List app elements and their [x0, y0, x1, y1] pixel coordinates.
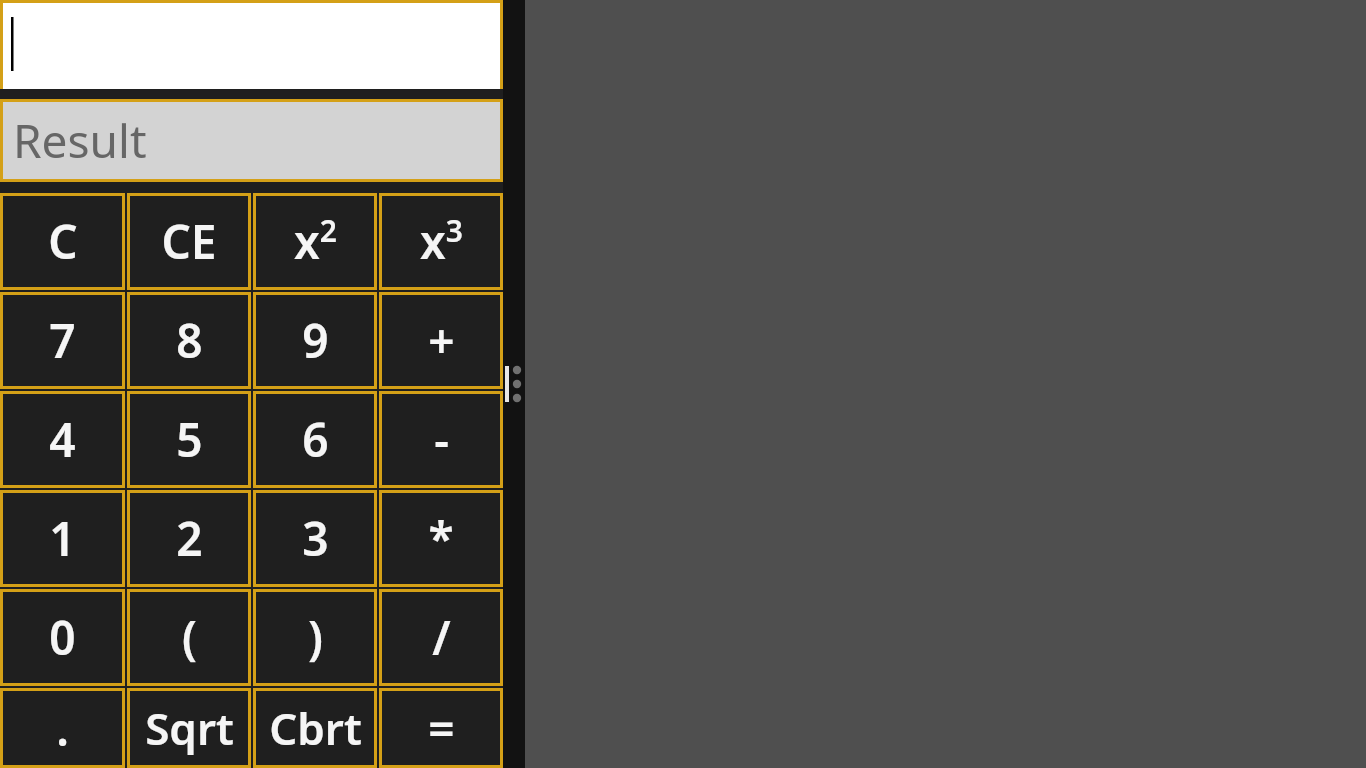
staticText: +	[428, 309, 455, 372]
staticText: -	[434, 408, 449, 471]
button[interactable]: 6	[256, 394, 374, 485]
staticText: x3	[420, 210, 463, 273]
button[interactable]: Sqrt	[130, 691, 248, 765]
staticText: CE	[161, 210, 217, 273]
button[interactable]: )	[256, 592, 374, 683]
staticText: )	[308, 606, 323, 669]
button[interactable]: 8	[130, 295, 248, 386]
staticText: *	[428, 507, 454, 570]
staticText: Cbrt	[269, 698, 362, 758]
button[interactable]: 2	[130, 493, 248, 584]
staticText: 1	[49, 507, 76, 570]
button[interactable]: 7	[3, 295, 122, 386]
button[interactable]: Resize panes	[503, 0, 525, 768]
staticText: /	[432, 606, 451, 669]
staticText: 6	[302, 408, 329, 471]
staticText: 7	[49, 309, 76, 372]
button[interactable]: 0	[3, 592, 122, 683]
button[interactable]: 5	[130, 394, 248, 485]
button[interactable]	[3, 3, 500, 89]
button[interactable]: 9	[256, 295, 374, 386]
button[interactable]: (	[130, 592, 248, 683]
button[interactable]: Cbrt	[256, 691, 374, 765]
button[interactable]: +	[382, 295, 500, 386]
button[interactable]: -	[382, 394, 500, 485]
button[interactable]: *	[382, 493, 500, 584]
button[interactable]: Result	[3, 102, 500, 179]
button[interactable]: CE	[130, 196, 248, 287]
button[interactable]: x2	[256, 196, 374, 287]
staticText: (	[182, 606, 197, 669]
button[interactable]: 3	[256, 493, 374, 584]
button[interactable]: .	[3, 691, 122, 765]
button[interactable]: C	[3, 196, 122, 287]
button[interactable]: 1	[3, 493, 122, 584]
staticText: 9	[302, 309, 329, 372]
staticText: .	[56, 697, 69, 760]
staticText: Sqrt	[145, 698, 234, 758]
button[interactable]: 4	[3, 394, 122, 485]
staticText: Result	[13, 109, 147, 172]
button[interactable]: /	[382, 592, 500, 683]
staticText: 8	[176, 309, 203, 372]
staticText: C	[48, 210, 78, 273]
button[interactable]: =	[382, 691, 500, 765]
staticText: x2	[294, 210, 337, 273]
staticText: 2	[176, 507, 203, 570]
staticText: 3	[302, 507, 329, 570]
button[interactable]: x3	[382, 196, 500, 287]
staticText: 5	[176, 408, 203, 471]
staticText: =	[428, 697, 455, 760]
staticText: 0	[49, 606, 76, 669]
staticText: 4	[49, 408, 76, 471]
